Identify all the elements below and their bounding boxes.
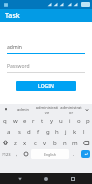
button[interactable]: h [53,127,60,136]
staticText: x [23,139,27,147]
button[interactable]: Back [13,173,27,184]
staticText: w [13,117,18,125]
button[interactable]: j [62,127,69,136]
button[interactable]: Enter [81,150,90,158]
button[interactable]: q [1,116,9,125]
button[interactable]: Home [39,173,53,184]
button[interactable]: p [84,116,91,125]
button[interactable]: z [11,137,20,148]
staticText: v [43,139,47,147]
button[interactable]: r [30,116,37,125]
button[interactable]: c [30,137,40,148]
button[interactable]: administrative [35,104,59,115]
staticText: c [34,139,37,147]
staticText: English [44,152,56,157]
button[interactable]: l [80,127,87,136]
button[interactable]: f [35,127,42,136]
button[interactable]: i [66,116,73,125]
staticText: admin [17,107,29,112]
button[interactable]: LOGIN [16,81,76,91]
staticText: d [27,128,31,136]
button[interactable]: Backspace [80,137,92,148]
button[interactable]: g [44,127,51,136]
staticText: . [73,151,75,158]
staticText: administrative [35,105,59,115]
staticText: k [73,128,77,136]
button[interactable]: Password [7,63,85,73]
staticText: administrator [59,105,83,115]
staticText: , [16,151,18,158]
staticText: s [18,128,21,136]
button[interactable]: e [21,116,28,125]
staticText: m [72,139,78,147]
button[interactable]: a [5,127,13,136]
staticText: n [63,139,67,147]
staticText: Task [5,11,20,21]
staticText: Password [7,63,30,70]
staticText: r [32,117,35,125]
button[interactable]: . [70,149,78,159]
button[interactable]: , [13,149,21,159]
button[interactable]: admin [7,44,85,54]
button[interactable]: Voice input [2,104,10,115]
button[interactable]: o [75,116,82,125]
staticText: g [46,128,50,136]
button[interactable]: admin [10,104,35,115]
staticText: j [65,128,67,136]
staticText: l [83,128,85,136]
staticText: ?123 [2,152,11,157]
staticText: p [86,117,90,125]
button[interactable]: Recents [66,173,80,184]
staticText: q [3,117,7,125]
button[interactable]: k [71,127,78,136]
button[interactable]: u [57,116,64,125]
staticText: t [41,117,44,125]
button[interactable]: x [20,137,30,148]
button[interactable]: v [40,137,50,148]
button[interactable]: b [50,137,60,148]
staticText: LOGIN [38,83,54,90]
button[interactable]: administrator [59,104,83,115]
staticText: h [55,128,59,136]
button[interactable]: Space [31,149,69,159]
staticText: b [53,139,57,147]
button[interactable]: ?123 [0,149,13,159]
button[interactable]: Shift [0,137,11,148]
button[interactable]: m [70,137,80,148]
button[interactable]: More suggestions [83,104,90,115]
staticText: e [23,117,27,125]
button[interactable]: y [48,116,55,125]
staticText: z [14,139,17,147]
button[interactable]: s [15,127,23,136]
button[interactable]: d [25,127,33,136]
button[interactable]: Emoji [21,149,30,159]
staticText: i [69,117,71,125]
staticText: y [50,117,54,125]
staticText: admin [7,44,22,51]
button[interactable]: w [11,116,19,125]
staticText: f [37,128,40,136]
button[interactable]: n [60,137,70,148]
staticText: a [7,128,11,136]
button[interactable]: t [39,116,46,125]
staticText: u [59,117,63,125]
staticText: o [77,117,81,125]
